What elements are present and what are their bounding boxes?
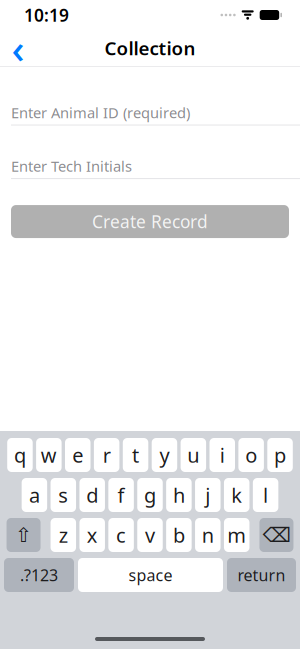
button[interactable]: a [22,478,47,512]
button[interactable]: z [51,518,76,552]
button[interactable]: v [137,518,163,552]
button[interactable]: r [94,438,119,472]
button[interactable]: o [238,438,264,472]
button[interactable]: Create Record [11,205,289,238]
staticText: x [87,522,98,548]
staticText: u [187,442,199,468]
staticText: t [132,442,139,468]
staticText: n [202,522,214,548]
button[interactable]: space [78,558,223,592]
staticText: a [29,482,40,508]
button[interactable]: return [227,558,296,592]
staticText: s [58,482,68,508]
staticText: j [205,482,210,508]
staticText: f [118,482,125,508]
button[interactable]: q [7,438,33,472]
button[interactable]: y [152,438,177,472]
staticText: ‹ [11,21,24,74]
staticText: p [274,442,286,468]
staticText: l [263,482,268,508]
button[interactable]: g [137,478,163,512]
button[interactable]: k [224,478,249,512]
button[interactable]: Shift [7,518,41,552]
button[interactable]: f [108,478,134,512]
button[interactable]: j [195,478,221,512]
staticText: Collection [104,36,195,60]
button[interactable]: .?123 [4,558,74,592]
staticText: b [173,522,185,548]
staticText: v [145,522,155,548]
staticText: h [173,482,185,508]
staticText: z [59,522,68,548]
staticText: ⌫ [262,524,290,546]
button[interactable]: d [79,478,105,512]
staticText: e [72,442,83,468]
button[interactable]: Back [0,30,36,66]
button[interactable]: c [108,518,134,552]
staticText: return [237,564,285,586]
staticText: o [245,442,257,468]
staticText: i [220,442,225,468]
button[interactable]: s [51,478,76,512]
staticText: 10:19 [24,3,69,26]
staticText: Create Record [92,210,208,233]
button[interactable]: e [65,438,90,472]
button[interactable]: x [79,518,105,552]
button[interactable]: Delete [259,518,293,552]
button[interactable]: m [224,518,249,552]
staticText: w [41,442,57,468]
staticText: ⇧ [15,524,32,546]
staticText: space [128,564,172,586]
staticText: c [116,522,126,548]
staticText: d [86,482,98,508]
staticText: y [159,442,169,468]
staticText: Enter Animal ID (required) [11,103,190,122]
button[interactable]: h [166,478,192,512]
staticText: Enter Tech Initials [11,156,132,176]
staticText: k [231,482,242,508]
staticText: g [144,482,156,508]
button[interactable]: l [253,478,278,512]
button[interactable]: t [123,438,148,472]
staticText: m [227,522,246,548]
button[interactable]: n [195,518,221,552]
button[interactable]: p [267,438,293,472]
button[interactable]: b [166,518,192,552]
button[interactable]: i [209,438,235,472]
button[interactable]: u [181,438,206,472]
button[interactable]: w [36,438,62,472]
staticText: r [103,442,111,468]
staticText: q [14,442,26,468]
staticText: .?123 [20,564,58,586]
